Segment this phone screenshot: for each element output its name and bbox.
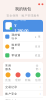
button[interactable]: 交易记录 bbox=[3, 84, 43, 90]
staticText: 我的钱包 bbox=[15, 6, 31, 11]
staticText: 账户安全 bbox=[5, 92, 17, 96]
staticText: › bbox=[40, 92, 41, 96]
staticText: 充值 bbox=[5, 78, 11, 82]
staticText: 交易记录 bbox=[5, 85, 17, 89]
staticText: 帮助中心 bbox=[5, 99, 17, 100]
staticText: 本月 bbox=[35, 45, 41, 48]
staticText: 账户余额 bbox=[14, 18, 26, 22]
staticText: 信用 bbox=[35, 78, 41, 82]
button[interactable]: 信用 bbox=[33, 72, 43, 82]
staticText: 账单明细 bbox=[11, 43, 20, 50]
button[interactable]: 账单明细 bbox=[3, 42, 43, 51]
staticText: 2 张 bbox=[35, 35, 41, 38]
button[interactable]: 帮助中心 bbox=[3, 98, 43, 100]
button[interactable]: More options bbox=[37, 2, 45, 6]
button[interactable]: 我的银行卡 bbox=[3, 32, 43, 41]
staticText: 我的银行卡 bbox=[11, 33, 20, 40]
staticText: › bbox=[40, 85, 41, 89]
staticText: 全部 › bbox=[36, 64, 41, 71]
staticText: 理财 bbox=[15, 78, 21, 82]
staticText: 零钱通 bbox=[11, 54, 20, 57]
staticText: 常用服务 bbox=[5, 64, 11, 71]
button[interactable]: 充值 bbox=[3, 72, 13, 82]
staticText: 转账 bbox=[25, 78, 31, 82]
button[interactable]: 转账 bbox=[23, 72, 33, 82]
button[interactable]: 零钱通 bbox=[3, 52, 43, 59]
staticText: 收益 bbox=[35, 54, 41, 57]
button[interactable]: 账户安全 bbox=[3, 91, 43, 97]
button[interactable]: 理财 bbox=[13, 72, 23, 82]
staticText: 安全保障 · 账户管理服务 bbox=[6, 14, 39, 17]
staticText: ¥ 1,280.00 bbox=[14, 23, 28, 33]
